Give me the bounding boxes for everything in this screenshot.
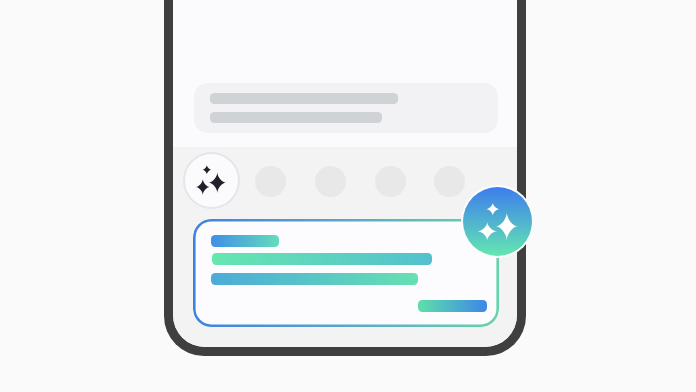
- button[interactable]: [193, 219, 499, 327]
- button[interactable]: AI assist: [185, 154, 238, 207]
- button[interactable]: [315, 166, 346, 197]
- button[interactable]: AI assistant: [463, 187, 532, 256]
- button[interactable]: [375, 166, 406, 197]
- button[interactable]: [255, 166, 286, 197]
- button[interactable]: [434, 166, 465, 197]
- button[interactable]: [194, 83, 498, 133]
